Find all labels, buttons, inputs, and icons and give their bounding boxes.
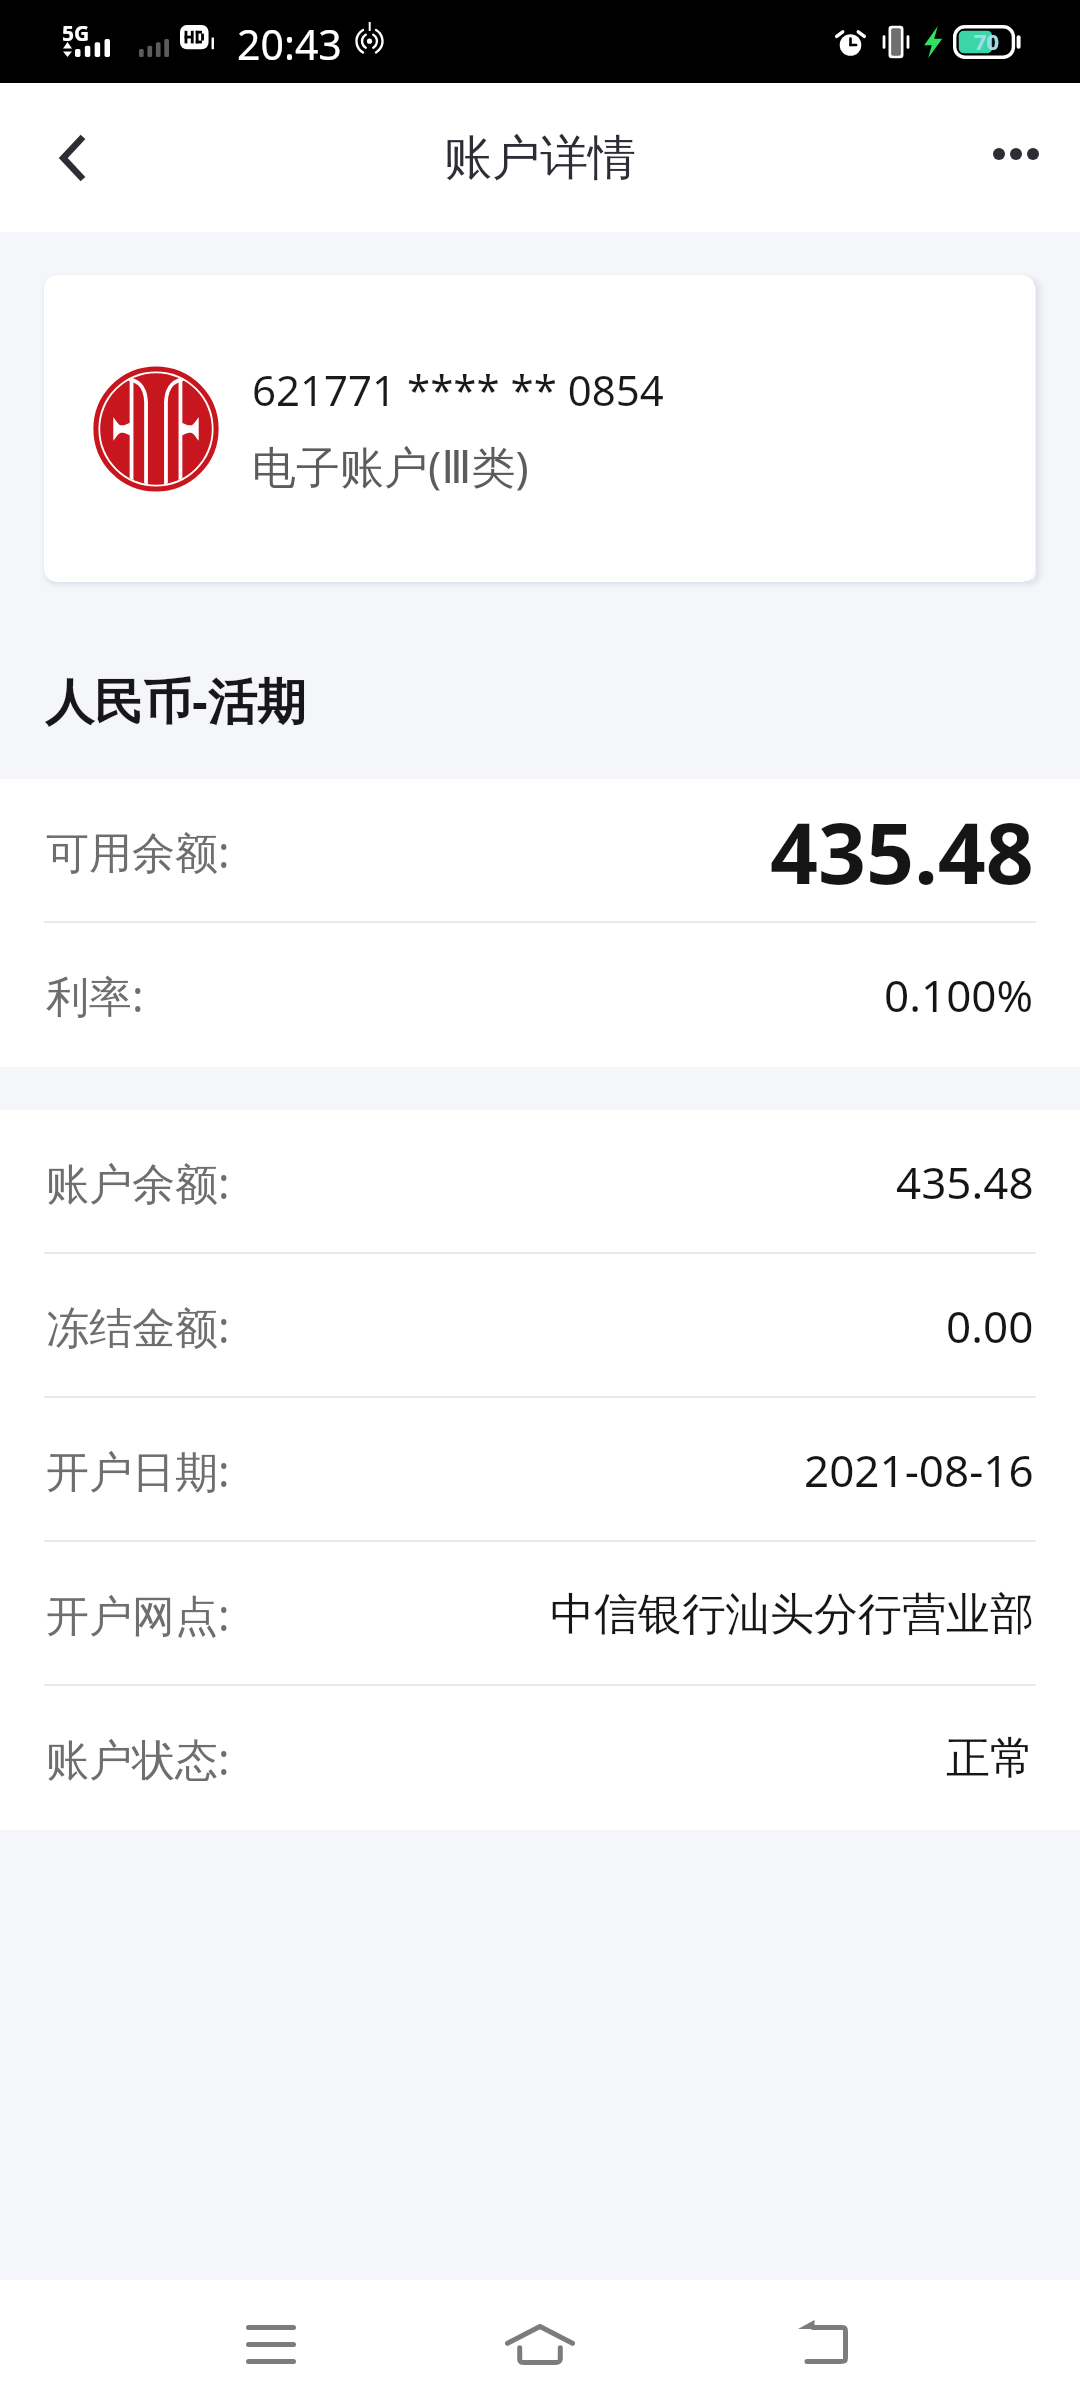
staticText: 利率: (46, 966, 144, 1025)
staticText: 正常 (946, 1731, 1034, 1786)
button[interactable]: Back (733, 2280, 913, 2408)
staticText: 电子账户(Ⅲ类) (252, 436, 529, 496)
button[interactable]: 利率: (0, 923, 1080, 1067)
staticText: 0.00 (946, 1296, 1034, 1356)
button[interactable]: 账户余额: (0, 1110, 1080, 1254)
staticText: 70 (974, 26, 1000, 56)
staticText: 冻结金额: (46, 1297, 230, 1356)
staticText: 账户详情 (444, 128, 636, 188)
staticText: 账户余额: (46, 1153, 230, 1212)
button[interactable]: 621771 **** ** 0854 (44, 275, 1035, 582)
staticText: 435.48 (896, 1152, 1034, 1212)
staticText: 账户状态: (46, 1729, 230, 1788)
staticText: 5G (62, 19, 90, 48)
staticText: 可用余额: (46, 822, 230, 881)
staticText: 0.100% (884, 965, 1034, 1025)
button[interactable]: 账户状态: (0, 1686, 1080, 1830)
button[interactable]: 开户网点: (0, 1542, 1080, 1686)
staticText: 开户网点: (46, 1585, 230, 1644)
button[interactable]: More options (946, 83, 1080, 232)
button[interactable]: Back (0, 83, 134, 232)
button[interactable]: Home (450, 2280, 630, 2408)
staticText: 人民币-活期 (45, 667, 306, 734)
staticText: 20:43 (237, 16, 342, 72)
staticText: 2021-08-16 (804, 1440, 1034, 1500)
button[interactable]: 冻结金额: (0, 1254, 1080, 1398)
staticText: 中信银行汕头分行营业部 (550, 1587, 1034, 1642)
staticText: 435.48 (770, 794, 1034, 908)
button[interactable]: 可用余额: (0, 779, 1080, 923)
button[interactable]: 开户日期: (0, 1398, 1080, 1542)
staticText: 开户日期: (46, 1441, 230, 1500)
button[interactable]: Recent apps (181, 2280, 361, 2408)
staticText: 621771 **** ** 0854 (252, 361, 664, 418)
